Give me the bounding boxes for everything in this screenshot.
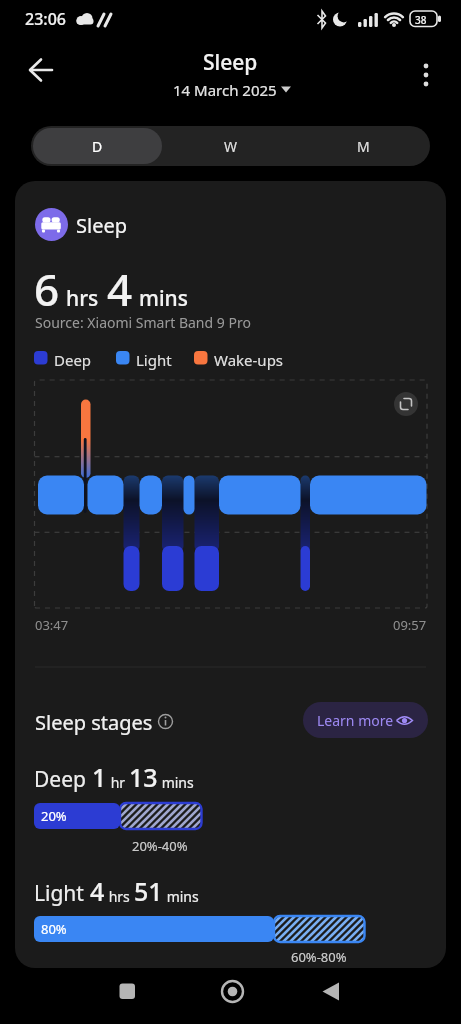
button[interactable]: 20% bbox=[34, 803, 120, 829]
staticText: 13 bbox=[129, 760, 158, 794]
button[interactable]: D bbox=[33, 128, 162, 164]
staticText: 60%-80% bbox=[291, 948, 347, 966]
button[interactable]: M bbox=[297, 126, 430, 166]
button[interactable] bbox=[412, 60, 440, 90]
staticText: Light bbox=[34, 879, 90, 908]
button[interactable]: Learn more bbox=[303, 702, 428, 738]
staticText: Deep bbox=[54, 350, 92, 370]
staticText: mins bbox=[139, 284, 188, 313]
button[interactable] bbox=[103, 975, 151, 1009]
staticText: Sleep stages bbox=[35, 709, 153, 736]
staticText: hrs bbox=[105, 887, 134, 906]
staticText: W bbox=[224, 137, 238, 156]
button[interactable]: 80% bbox=[34, 916, 274, 942]
staticText: 09:57 bbox=[393, 616, 427, 634]
button[interactable] bbox=[393, 391, 419, 417]
staticText: hrs bbox=[66, 284, 99, 313]
staticText: Wake-ups bbox=[214, 350, 284, 370]
staticText: 51 bbox=[134, 874, 163, 908]
staticText: mins bbox=[163, 887, 199, 906]
staticText: 20% bbox=[41, 807, 67, 825]
staticText: 80% bbox=[41, 920, 67, 938]
staticText: D bbox=[92, 137, 103, 156]
button[interactable]: 14 March 2025 bbox=[173, 80, 277, 100]
staticText: Learn more bbox=[317, 711, 394, 730]
button[interactable] bbox=[307, 975, 355, 1009]
staticText: Deep bbox=[34, 765, 92, 794]
staticText: Light bbox=[136, 350, 172, 370]
staticText: 1 bbox=[92, 760, 107, 794]
button[interactable]: W bbox=[164, 126, 297, 166]
staticText: 38 bbox=[415, 13, 427, 27]
staticText: 20%-40% bbox=[132, 837, 188, 855]
staticText: 4 bbox=[90, 874, 105, 908]
staticText: M bbox=[357, 137, 370, 156]
staticText: 23:06 bbox=[25, 8, 66, 30]
staticText: Sleep bbox=[76, 212, 127, 239]
staticText: Source: Xiaomi Smart Band 9 Pro bbox=[35, 313, 251, 332]
staticText: 4 bbox=[107, 259, 133, 319]
button[interactable] bbox=[208, 975, 256, 1009]
staticText: mins bbox=[158, 773, 194, 792]
staticText: 03:47 bbox=[35, 616, 69, 634]
staticText: hr bbox=[107, 773, 129, 792]
staticText: 6 bbox=[34, 259, 60, 319]
staticText: Sleep bbox=[203, 48, 258, 77]
button[interactable] bbox=[24, 56, 56, 84]
